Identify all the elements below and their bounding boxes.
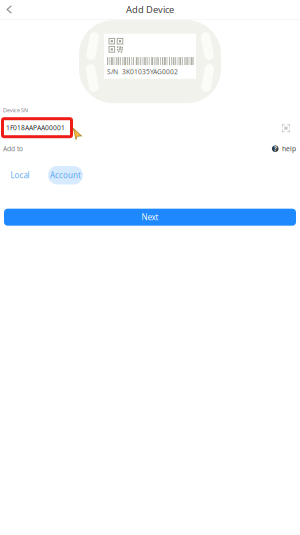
staticText: 1F018AAPAA00001 [6, 123, 65, 132]
staticText: S/N 3K01035YAG0002 [107, 67, 178, 76]
button[interactable]: Scan SN code [276, 119, 298, 139]
staticText: Account [50, 170, 81, 180]
staticText: Add Device [126, 3, 174, 16]
button[interactable]: Next [4, 209, 296, 226]
staticText: Device SN [3, 107, 28, 114]
button[interactable]: ? [272, 144, 296, 154]
button[interactable]: Local [2, 166, 37, 184]
staticText: Add to [3, 144, 23, 153]
button[interactable]: Account [48, 166, 83, 184]
button[interactable]: 1F018AAPAA00001 [2, 119, 71, 137]
staticText: help [282, 144, 296, 153]
staticText: Next [141, 212, 158, 222]
staticText: Local [10, 170, 29, 180]
staticText: ? [274, 144, 277, 153]
button[interactable]: Back [0, 1, 18, 18]
